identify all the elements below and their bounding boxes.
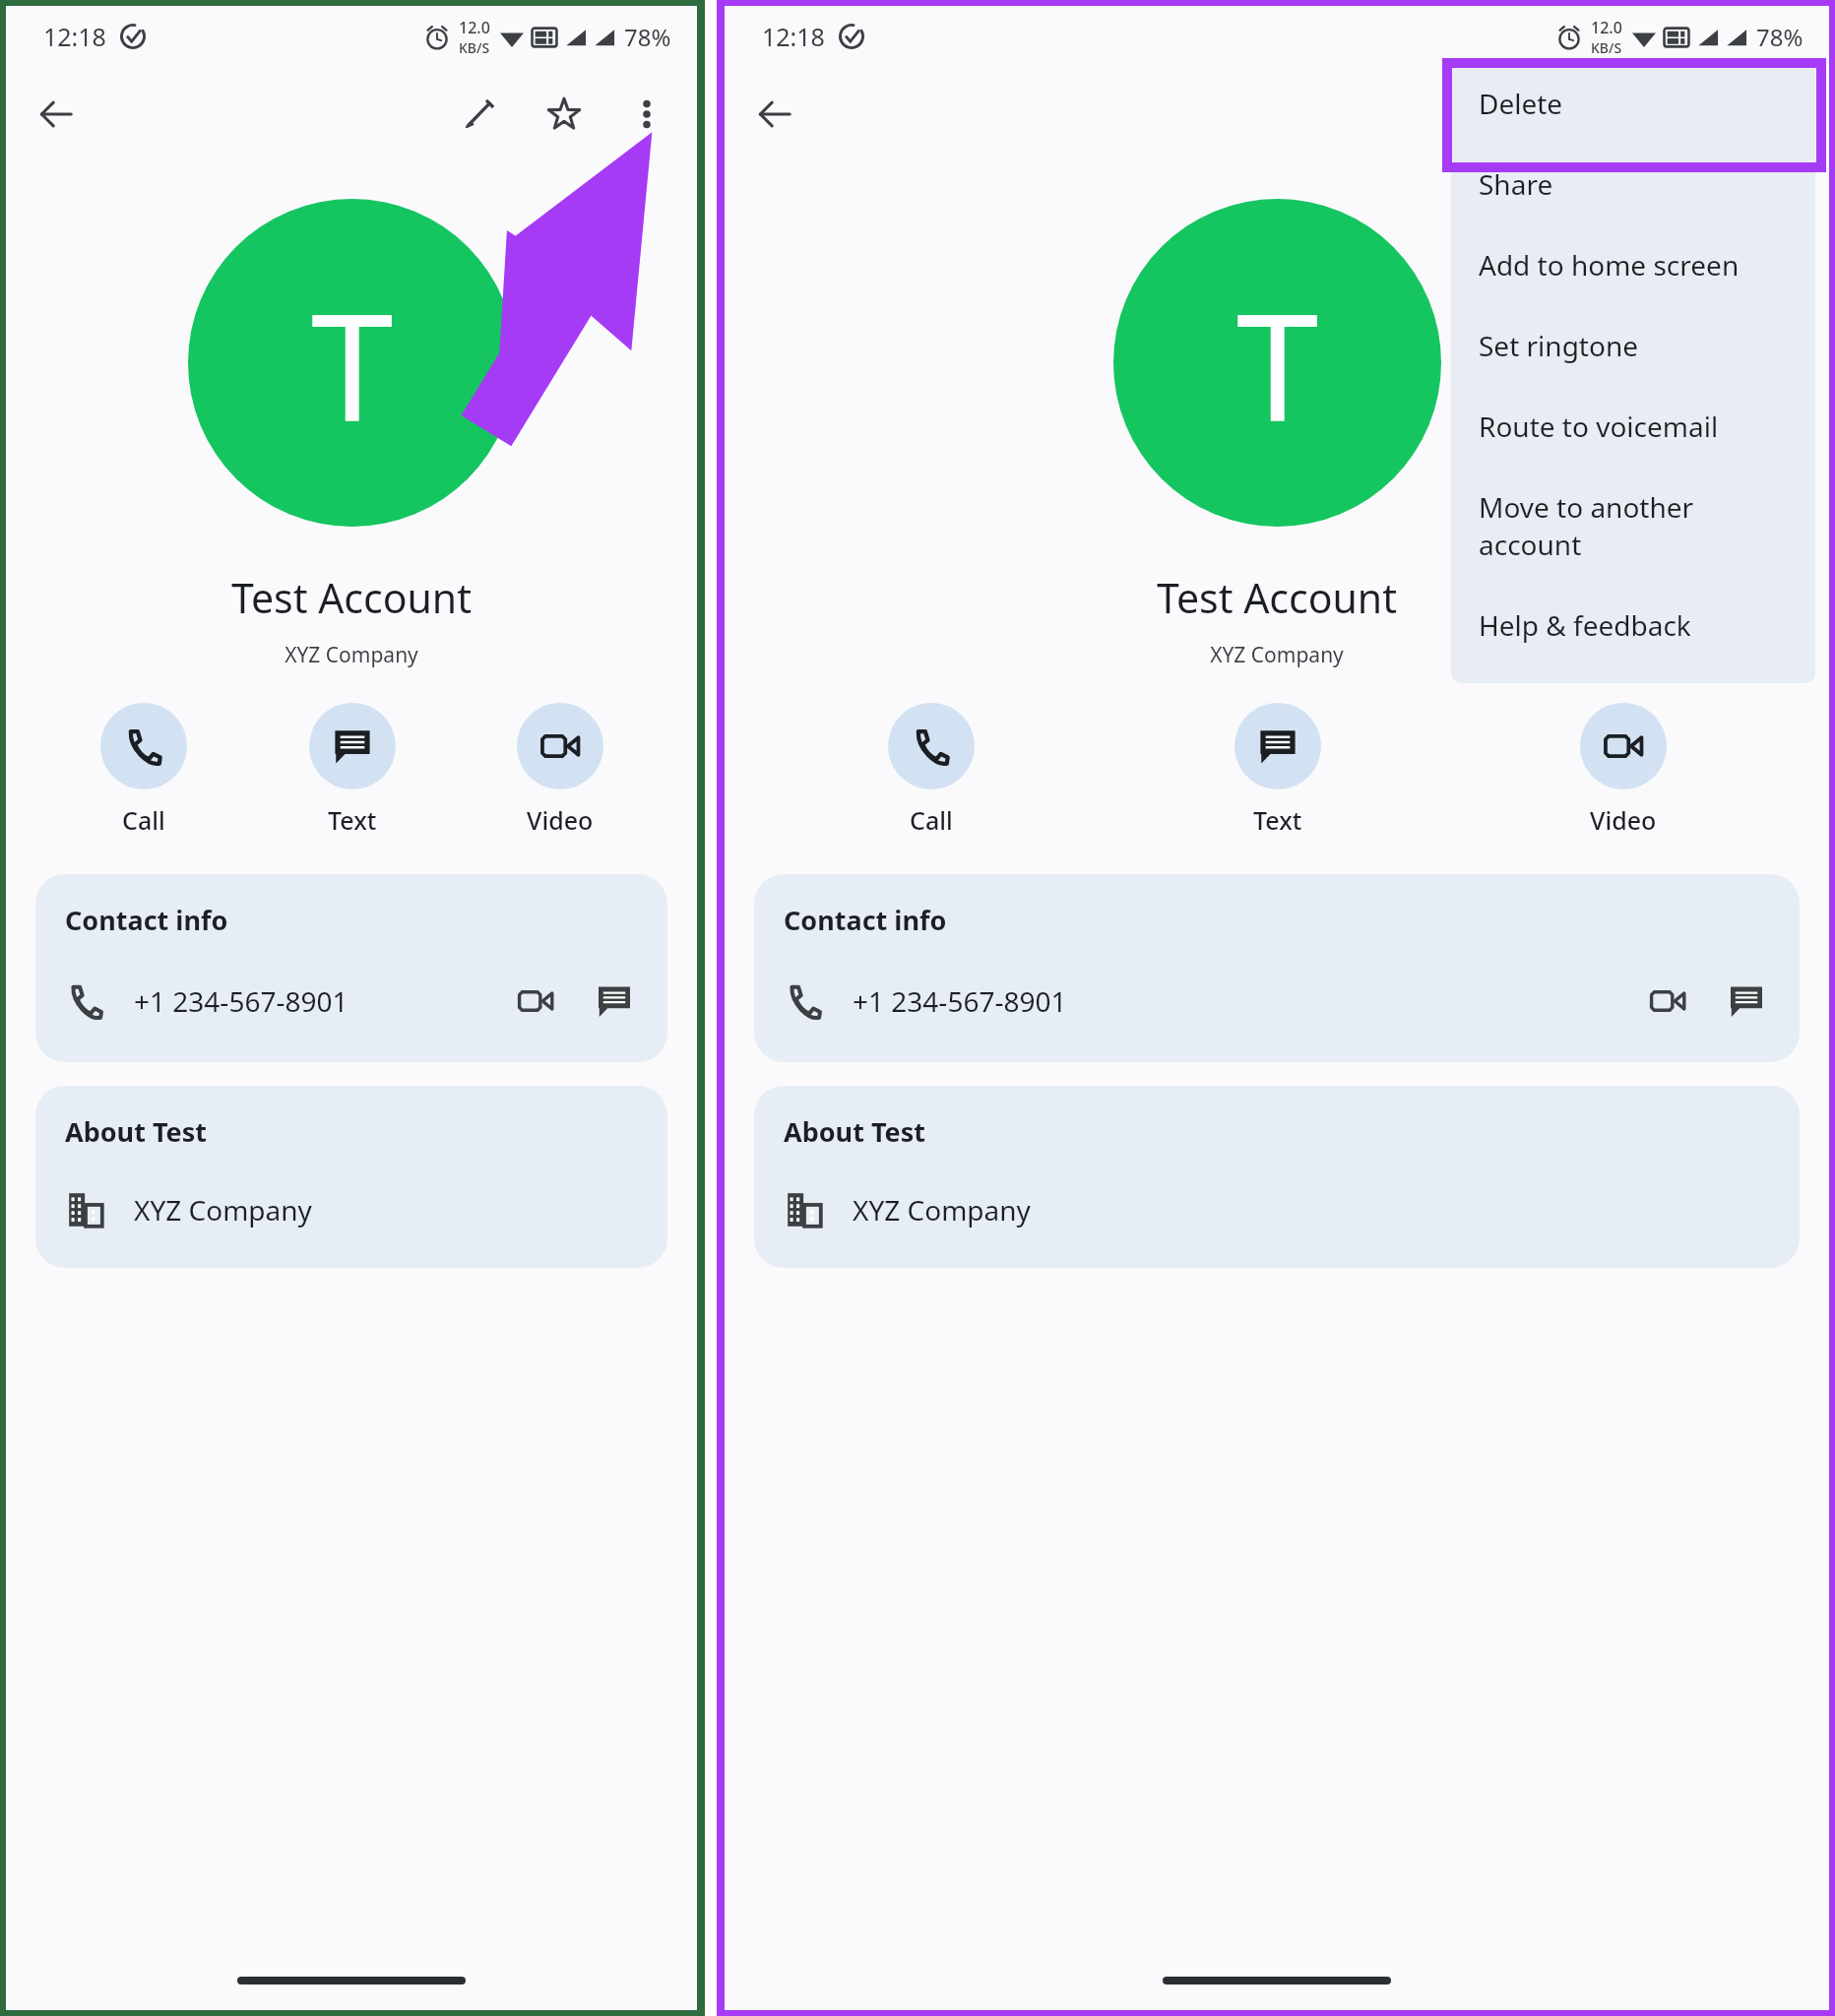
button[interactable]: Text — [1105, 699, 1450, 841]
button[interactable]: Favorite — [536, 86, 593, 143]
button[interactable]: Send message — [1719, 974, 1774, 1029]
staticText: XYZ Company — [725, 641, 1829, 669]
staticText: XYZ Company — [6, 641, 697, 669]
staticText: KB/S — [1591, 38, 1622, 57]
button[interactable]: Set ringtone — [1451, 305, 1815, 386]
button[interactable]: Send message — [587, 974, 642, 1029]
staticText: XYZ Company — [134, 1191, 312, 1228]
button[interactable]: Help & feedback — [1451, 585, 1815, 665]
staticText: Call — [122, 803, 165, 837]
staticText: About Test — [65, 1113, 207, 1150]
button[interactable]: XYZ Company — [754, 1189, 1800, 1268]
staticText: Delete — [1479, 85, 1563, 122]
button[interactable]: Move to another account — [1451, 467, 1815, 585]
button[interactable]: Edit — [451, 86, 508, 143]
button[interactable]: +1 234-567-8901 — [754, 974, 1800, 1062]
staticText: 12:18 — [43, 20, 106, 53]
button[interactable]: Call — [39, 699, 248, 841]
staticText: XYZ Company — [853, 1191, 1031, 1228]
staticText: 12.0 — [1591, 17, 1622, 38]
staticText: Video — [1590, 803, 1657, 837]
staticText: 12:18 — [762, 20, 825, 53]
button[interactable]: Add to home screen — [1451, 224, 1815, 305]
staticText: Help & feedback — [1479, 606, 1691, 644]
staticText: Set ringtone — [1479, 327, 1639, 364]
button[interactable]: Route to voicemail — [1451, 386, 1815, 467]
button[interactable]: +1 234-567-8901 — [35, 974, 667, 1062]
staticText: Text — [1253, 803, 1302, 837]
staticText: T — [1236, 263, 1319, 464]
button[interactable]: Video call — [508, 974, 563, 1029]
staticText: Video — [527, 803, 594, 837]
button[interactable]: Delete — [1451, 63, 1815, 144]
staticText: Test Account — [6, 570, 697, 625]
staticText: Text — [328, 803, 377, 837]
button[interactable]: Back — [746, 87, 801, 142]
button[interactable]: More options — [618, 86, 675, 143]
button[interactable]: Call — [758, 699, 1105, 841]
staticText: Call — [910, 803, 953, 837]
staticText: Move to another account — [1479, 488, 1796, 563]
button[interactable]: XYZ Company — [35, 1189, 667, 1268]
staticText: Add to home screen — [1479, 246, 1740, 283]
button[interactable]: Video — [456, 699, 664, 841]
button[interactable]: Video call — [1640, 974, 1695, 1029]
button[interactable]: Text — [248, 699, 456, 841]
staticText: Test Account — [725, 570, 1829, 625]
button[interactable]: Back — [28, 87, 83, 142]
staticText: Contact info — [65, 902, 228, 938]
staticText: 78% — [624, 21, 671, 53]
staticText: +1 234-567-8901 — [134, 982, 348, 1020]
staticText: 12.0 — [459, 17, 490, 38]
staticText: +1 234-567-8901 — [853, 982, 1067, 1020]
button[interactable]: Video — [1450, 699, 1796, 841]
staticText: KB/S — [459, 38, 490, 57]
staticText: T — [311, 263, 394, 464]
staticText: Route to voicemail — [1479, 408, 1719, 445]
staticText: Contact info — [784, 902, 947, 938]
staticText: About Test — [784, 1113, 925, 1150]
staticText: Share — [1479, 165, 1553, 203]
button[interactable]: Share — [1451, 144, 1815, 224]
staticText: 78% — [1756, 21, 1803, 53]
